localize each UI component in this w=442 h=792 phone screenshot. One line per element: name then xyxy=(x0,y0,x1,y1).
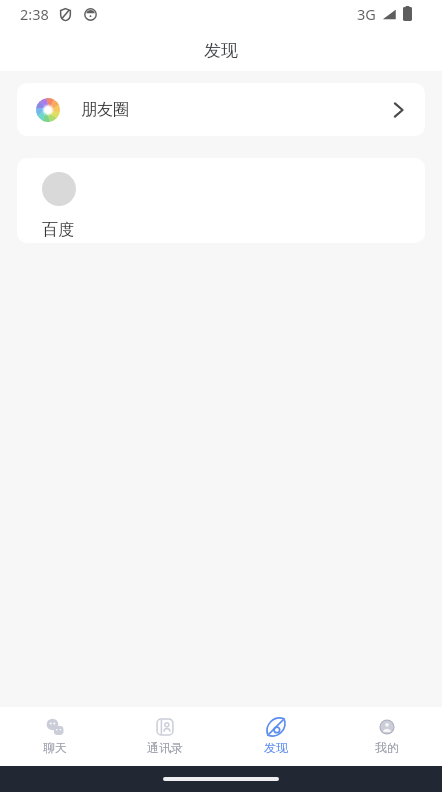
button[interactable]: 聊天 xyxy=(0,707,110,766)
staticText: 百度 xyxy=(42,220,74,240)
staticText: 2:38 xyxy=(20,4,49,24)
other: 通讯录 xyxy=(156,718,174,736)
staticText: 3G xyxy=(357,4,376,24)
staticText: 发现 xyxy=(204,40,238,61)
button[interactable]: 我的 xyxy=(331,707,442,766)
staticText: 我的 xyxy=(375,740,399,755)
button[interactable]: 发现 xyxy=(220,707,331,766)
button[interactable]: 百度 xyxy=(17,158,425,243)
other: 我的 xyxy=(378,718,396,736)
staticText: 发现 xyxy=(264,740,288,755)
other: 聊天 xyxy=(46,718,64,736)
other: 发现 xyxy=(267,718,285,736)
button[interactable]: 通讯录 xyxy=(110,707,220,766)
staticText: 通讯录 xyxy=(147,740,183,755)
staticText: 聊天 xyxy=(43,740,67,755)
button[interactable]: 朋友圈 xyxy=(17,83,425,136)
staticText: 朋友圈 xyxy=(81,100,129,120)
